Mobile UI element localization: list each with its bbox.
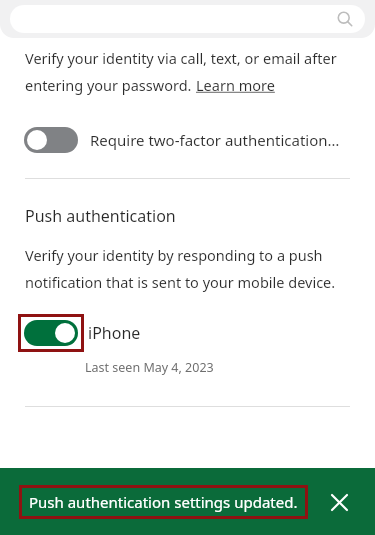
staticText: entering your password. (25, 75, 196, 95)
button[interactable]: Search (10, 5, 365, 33)
button[interactable]: Push authentication settings updated. (19, 485, 308, 519)
button[interactable]: Toggle on (0, 314, 375, 352)
staticText: Last seen May 4, 2023 (85, 359, 214, 376)
staticText: notification that is sent to your mobile… (25, 272, 336, 292)
button[interactable]: Toggle off (24, 127, 78, 153)
staticText: Push authentication (25, 205, 176, 227)
button[interactable]: Learn more (196, 75, 275, 95)
staticText: iPhone (88, 322, 141, 344)
staticText: Require two-factor authentication… (90, 130, 340, 150)
staticText: Verify your identity by responding to a … (25, 245, 323, 265)
staticText: Verify your identity via call, text, or … (25, 48, 337, 68)
staticText: Push authentication settings updated. (29, 492, 298, 512)
button[interactable]: Dismiss (325, 488, 353, 516)
button[interactable]: Toggle on (24, 320, 78, 346)
button[interactable]: Toggle off (0, 123, 375, 157)
